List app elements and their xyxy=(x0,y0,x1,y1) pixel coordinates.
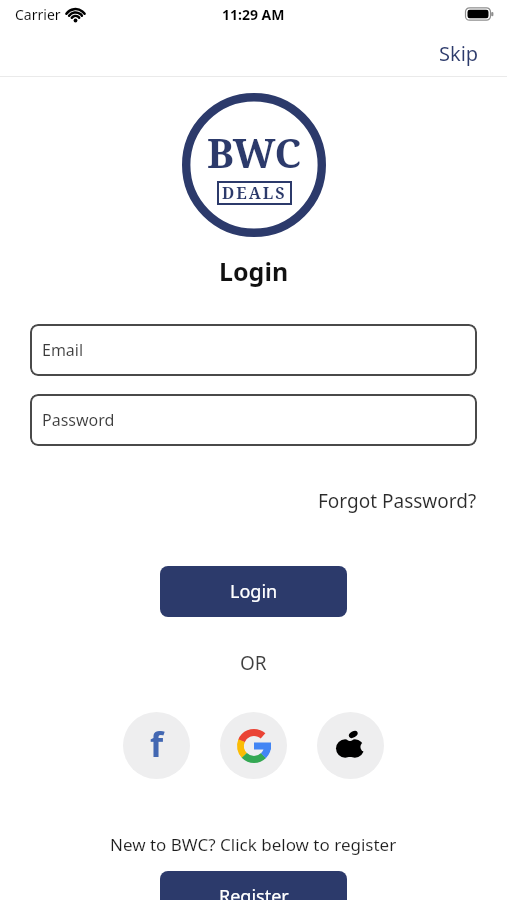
staticText: BWC xyxy=(207,125,302,179)
button[interactable]: Login xyxy=(160,566,347,617)
button[interactable] xyxy=(317,712,384,779)
button[interactable]: Skip xyxy=(435,36,483,71)
staticText: Login xyxy=(219,254,289,288)
staticText: Carrier xyxy=(15,5,61,24)
button[interactable]: Register xyxy=(160,871,347,900)
staticText: Login xyxy=(230,579,278,604)
button[interactable]: Email xyxy=(30,324,477,376)
staticText: Password xyxy=(42,409,115,431)
staticText: Email xyxy=(42,339,84,361)
button[interactable] xyxy=(220,712,287,779)
staticText: Register xyxy=(219,884,289,900)
staticText: DEALS xyxy=(222,182,287,204)
staticText: f xyxy=(150,721,164,767)
button[interactable]: f xyxy=(123,712,190,779)
button[interactable]: Forgot Password? xyxy=(318,488,477,514)
staticText: OR xyxy=(240,650,267,676)
staticText: New to BWC? Click below to register xyxy=(110,833,397,856)
staticText: 11:29 AM xyxy=(222,5,285,24)
button[interactable]: Password xyxy=(30,394,477,446)
